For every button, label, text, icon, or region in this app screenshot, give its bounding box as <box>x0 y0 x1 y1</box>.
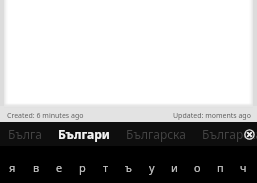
button[interactable]: п <box>209 146 232 183</box>
button[interactable]: е <box>48 146 71 183</box>
staticText: ъ <box>125 160 132 175</box>
staticText: Българска <box>126 126 186 142</box>
staticText: Българи <box>58 126 110 142</box>
button[interactable]: ъ <box>117 146 140 183</box>
button[interactable] <box>4 0 253 107</box>
staticText: в <box>33 160 40 175</box>
staticText: ч <box>240 160 247 175</box>
button[interactable]: Българи <box>58 122 110 146</box>
staticText: п <box>217 160 224 175</box>
button[interactable]: о <box>186 146 209 183</box>
button[interactable]: ч <box>232 146 255 183</box>
staticText: т <box>103 160 109 175</box>
button[interactable]: Българска <box>126 122 186 146</box>
button[interactable]: р <box>71 146 94 183</box>
staticText: Бълга <box>8 126 42 142</box>
staticText: р <box>79 160 86 175</box>
button[interactable]: Close suggestions <box>242 127 256 141</box>
button[interactable]: Бълга <box>8 122 42 146</box>
staticText: Created: 6 minutes ago <box>7 111 84 121</box>
button[interactable]: и <box>163 146 186 183</box>
staticText: о <box>194 160 201 175</box>
button[interactable]: у <box>140 146 163 183</box>
staticText: я <box>9 160 16 175</box>
staticText: Българска <box>202 126 257 142</box>
button[interactable]: я <box>0 146 24 183</box>
button[interactable]: Българска <box>202 122 257 146</box>
staticText: Updated: moments ago <box>173 111 251 121</box>
button[interactable]: в <box>24 146 48 183</box>
staticText: е <box>56 160 63 175</box>
button[interactable]: т <box>94 146 117 183</box>
staticText: и <box>171 160 178 175</box>
staticText: у <box>149 160 155 175</box>
